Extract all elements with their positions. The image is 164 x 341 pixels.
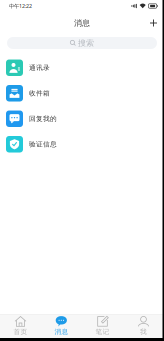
staticText: 验证信息 [29, 140, 57, 148]
button[interactable]: 新建 [142, 12, 164, 34]
staticText: 消息 [54, 328, 68, 336]
button[interactable]: 我 [123, 314, 164, 338]
staticText: 笔记 [95, 328, 109, 336]
button[interactable]: 回复我的 [0, 106, 164, 131]
button[interactable]: 搜索 [7, 37, 157, 49]
staticText: 收件箱 [29, 89, 50, 97]
button[interactable]: 消息 [41, 314, 82, 338]
button[interactable]: 验证信息 [0, 131, 164, 157]
button[interactable]: 通讯录 [0, 55, 164, 80]
button[interactable]: 收件箱 [0, 80, 164, 106]
button[interactable]: 笔记 [82, 314, 123, 338]
staticText: 中午12:22 [9, 2, 32, 10]
staticText: 消息 [74, 18, 90, 28]
staticText: 回复我的 [29, 115, 57, 123]
staticText: 首页 [13, 328, 27, 336]
button[interactable]: 首页 [0, 314, 41, 338]
staticText: 通讯录 [29, 64, 50, 72]
staticText: 我 [140, 328, 147, 336]
staticText: 搜索 [78, 38, 94, 48]
